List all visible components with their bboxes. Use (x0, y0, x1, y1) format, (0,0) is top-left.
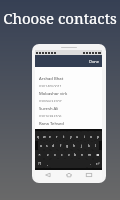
button[interactable]: d (50, 141, 57, 150)
button[interactable]: a (38, 141, 44, 150)
button[interactable]: h (71, 141, 78, 150)
button[interactable]: Back (41, 170, 55, 180)
button[interactable]: t (60, 131, 67, 141)
button[interactable] (93, 159, 102, 168)
button[interactable]: b (72, 150, 79, 159)
staticText: l (95, 143, 96, 148)
button[interactable]: Recents (82, 170, 96, 180)
staticText: Arshad Bhat (39, 76, 64, 82)
button[interactable]: Done (85, 57, 102, 66)
button[interactable]: e (47, 131, 53, 141)
staticText: h (73, 143, 76, 148)
staticText: f (60, 143, 62, 148)
button[interactable]: u (74, 131, 81, 141)
staticText: p (97, 134, 100, 139)
staticText: x (54, 152, 56, 157)
button[interactable]: Mobashar virk (35, 87, 102, 102)
staticText: i (84, 134, 85, 139)
button[interactable]: . (87, 159, 93, 168)
button[interactable]: s (44, 141, 50, 150)
button[interactable]: m (86, 150, 93, 159)
button[interactable]: r (53, 131, 60, 141)
button[interactable]: Suresh Ali (35, 102, 102, 117)
staticText: s (46, 143, 48, 148)
button[interactable]: l (92, 141, 99, 150)
staticText: c (61, 152, 63, 157)
button[interactable]: n (79, 150, 86, 159)
staticText: g (66, 143, 69, 148)
staticText: , (47, 161, 48, 166)
staticText: y (70, 134, 72, 139)
staticText: t (63, 134, 65, 139)
button[interactable]: Rana Tehsed (35, 117, 102, 129)
button[interactable]: Arshad Bhat (35, 72, 102, 87)
button[interactable]: v (65, 150, 72, 159)
button[interactable]: o (88, 131, 95, 141)
button[interactable]: c (58, 150, 65, 159)
staticText: Suresh Ali (39, 106, 59, 112)
staticText: 03016384106 (39, 114, 62, 117)
button[interactable]: z (44, 150, 51, 159)
button[interactable]: i (81, 131, 88, 141)
staticText: j (81, 143, 82, 148)
button[interactable]: , (44, 159, 50, 168)
button[interactable]: x (51, 150, 58, 159)
button[interactable]: p (95, 131, 102, 141)
staticText: m (88, 152, 92, 157)
staticText: Choose contacts (0, 8, 120, 28)
staticText: a (40, 143, 42, 148)
staticText: u (76, 134, 79, 139)
button[interactable] (93, 150, 102, 159)
button[interactable]: ?1 (35, 159, 44, 168)
staticText: ?1 (38, 161, 42, 166)
staticText: Mobashar virk (39, 91, 68, 97)
staticText: w (43, 134, 46, 139)
button[interactable]: q (35, 131, 41, 141)
staticText: q (37, 134, 40, 139)
button[interactable]: y (67, 131, 74, 141)
staticText: n (81, 152, 84, 157)
staticText: Done (89, 59, 100, 64)
button[interactable]: f (57, 141, 64, 150)
staticText: 03014050011 (39, 84, 62, 87)
button[interactable]: g (64, 141, 71, 150)
staticText: r (56, 134, 58, 139)
staticText: 03006634207 (39, 99, 62, 102)
staticText: e (49, 134, 51, 139)
button[interactable]: Home (62, 170, 76, 180)
staticText: k (88, 143, 90, 148)
button[interactable]: k (85, 141, 92, 150)
button[interactable]: j (78, 141, 85, 150)
staticText: . (90, 161, 91, 166)
staticText: Rana Tehsed (39, 121, 64, 127)
button[interactable]: w (41, 131, 47, 141)
staticText: b (74, 152, 77, 157)
staticText: d (52, 143, 55, 148)
staticText: v (68, 152, 70, 157)
button[interactable] (35, 150, 44, 159)
staticText: o (90, 134, 93, 139)
staticText: z (47, 152, 49, 157)
